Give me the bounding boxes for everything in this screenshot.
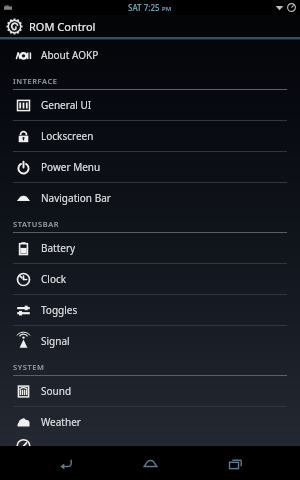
button[interactable]: Clock [0,264,300,294]
staticText: Navigation Bar [41,191,111,205]
staticText: Battery [41,241,76,255]
button[interactable]: Power Menu [0,152,300,182]
staticText: Clock [41,272,67,286]
staticText: About AOKP [41,48,99,62]
staticText: Sound [41,384,72,398]
button[interactable]: Lockscreen [0,121,300,151]
button[interactable]: Battery [0,233,300,263]
staticText: INTERFACE [13,76,58,86]
button[interactable]: Home [130,446,170,480]
button[interactable]: Recent apps [215,446,255,480]
button[interactable]: General UI [0,90,300,120]
staticText: General UI [41,98,92,112]
staticText: STATUSBAR [13,219,60,229]
staticText: SYSTEM [13,362,45,372]
button[interactable]: Sound [0,376,300,406]
staticText: Weather [41,415,81,429]
staticText: Power Menu [41,160,101,174]
staticText: Lockscreen [41,129,94,143]
staticText: SAT 7:25 [128,2,160,13]
button[interactable]: Navigation Bar [0,183,300,213]
staticText: Signal [41,334,70,348]
button[interactable]: ROM Control [0,15,300,37]
button[interactable]: Back [45,446,85,480]
staticText: TOOLS [13,443,40,446]
staticText: ROM Control [29,19,96,34]
button[interactable]: Signal [0,326,300,356]
button[interactable]: Toggles [0,295,300,325]
button[interactable]: Weather [0,407,300,437]
button[interactable]: About AOKP [0,40,300,70]
staticText: PM [162,5,172,13]
staticText: Toggles [41,303,78,317]
